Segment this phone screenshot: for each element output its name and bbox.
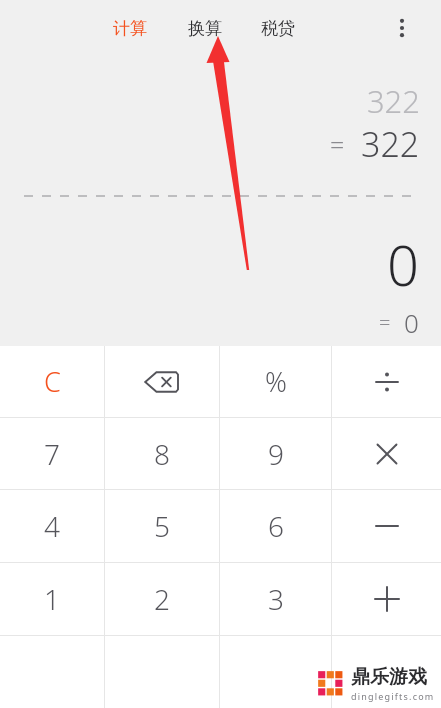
button[interactable]: 5 <box>105 490 219 562</box>
button[interactable]: 9 <box>220 418 331 489</box>
staticText: 税贷 <box>261 18 295 39</box>
button[interactable]: 1 <box>0 563 104 635</box>
other: Backspace <box>142 362 182 402</box>
staticText: 322 <box>366 80 420 122</box>
staticText: C <box>44 363 61 400</box>
staticText: 0 <box>404 305 419 340</box>
button[interactable]: 7 <box>0 418 104 489</box>
staticText: 5 <box>154 507 170 545</box>
button[interactable]: More options <box>380 6 424 50</box>
button[interactable]: 6 <box>220 490 331 562</box>
button[interactable]: 8 <box>105 418 219 489</box>
staticText: 3 <box>268 580 284 618</box>
staticText: 322 <box>361 121 420 167</box>
staticText: 2 <box>154 580 170 618</box>
button[interactable]: 4 <box>0 490 104 562</box>
button[interactable]: Backspace <box>105 346 219 417</box>
staticText: 1 <box>44 580 60 618</box>
staticText: 9 <box>268 435 284 473</box>
button[interactable]: Divide <box>332 346 441 417</box>
button[interactable] <box>220 636 331 708</box>
staticText: 7 <box>44 435 60 473</box>
staticText: = <box>379 309 391 336</box>
other: Plus <box>367 579 407 619</box>
other: Minus <box>367 506 407 546</box>
button[interactable]: Multiply <box>332 418 441 489</box>
button[interactable]: 换算 <box>184 10 226 47</box>
staticText: = <box>330 127 345 161</box>
button[interactable]: 计算 <box>109 10 151 47</box>
staticText: 8 <box>154 435 170 473</box>
staticText: 换算 <box>188 18 222 39</box>
staticText: 6 <box>268 507 284 545</box>
button[interactable]: Plus <box>332 563 441 635</box>
staticText: 0 <box>387 226 419 302</box>
button[interactable]: C <box>0 346 104 417</box>
button[interactable]: 2 <box>105 563 219 635</box>
staticText: 4 <box>44 507 60 545</box>
staticText: dinglegifts.com <box>351 690 435 702</box>
other: Divide <box>367 362 407 402</box>
button[interactable]: 3 <box>220 563 331 635</box>
button[interactable]: % <box>220 346 331 417</box>
staticText: % <box>265 363 287 400</box>
button[interactable]: 税贷 <box>257 10 299 47</box>
staticText: 计算 <box>113 18 147 39</box>
staticText: 鼎乐游戏 <box>351 665 427 689</box>
button[interactable]: Minus <box>332 490 441 562</box>
button[interactable] <box>332 636 441 708</box>
other: Multiply <box>367 434 407 474</box>
